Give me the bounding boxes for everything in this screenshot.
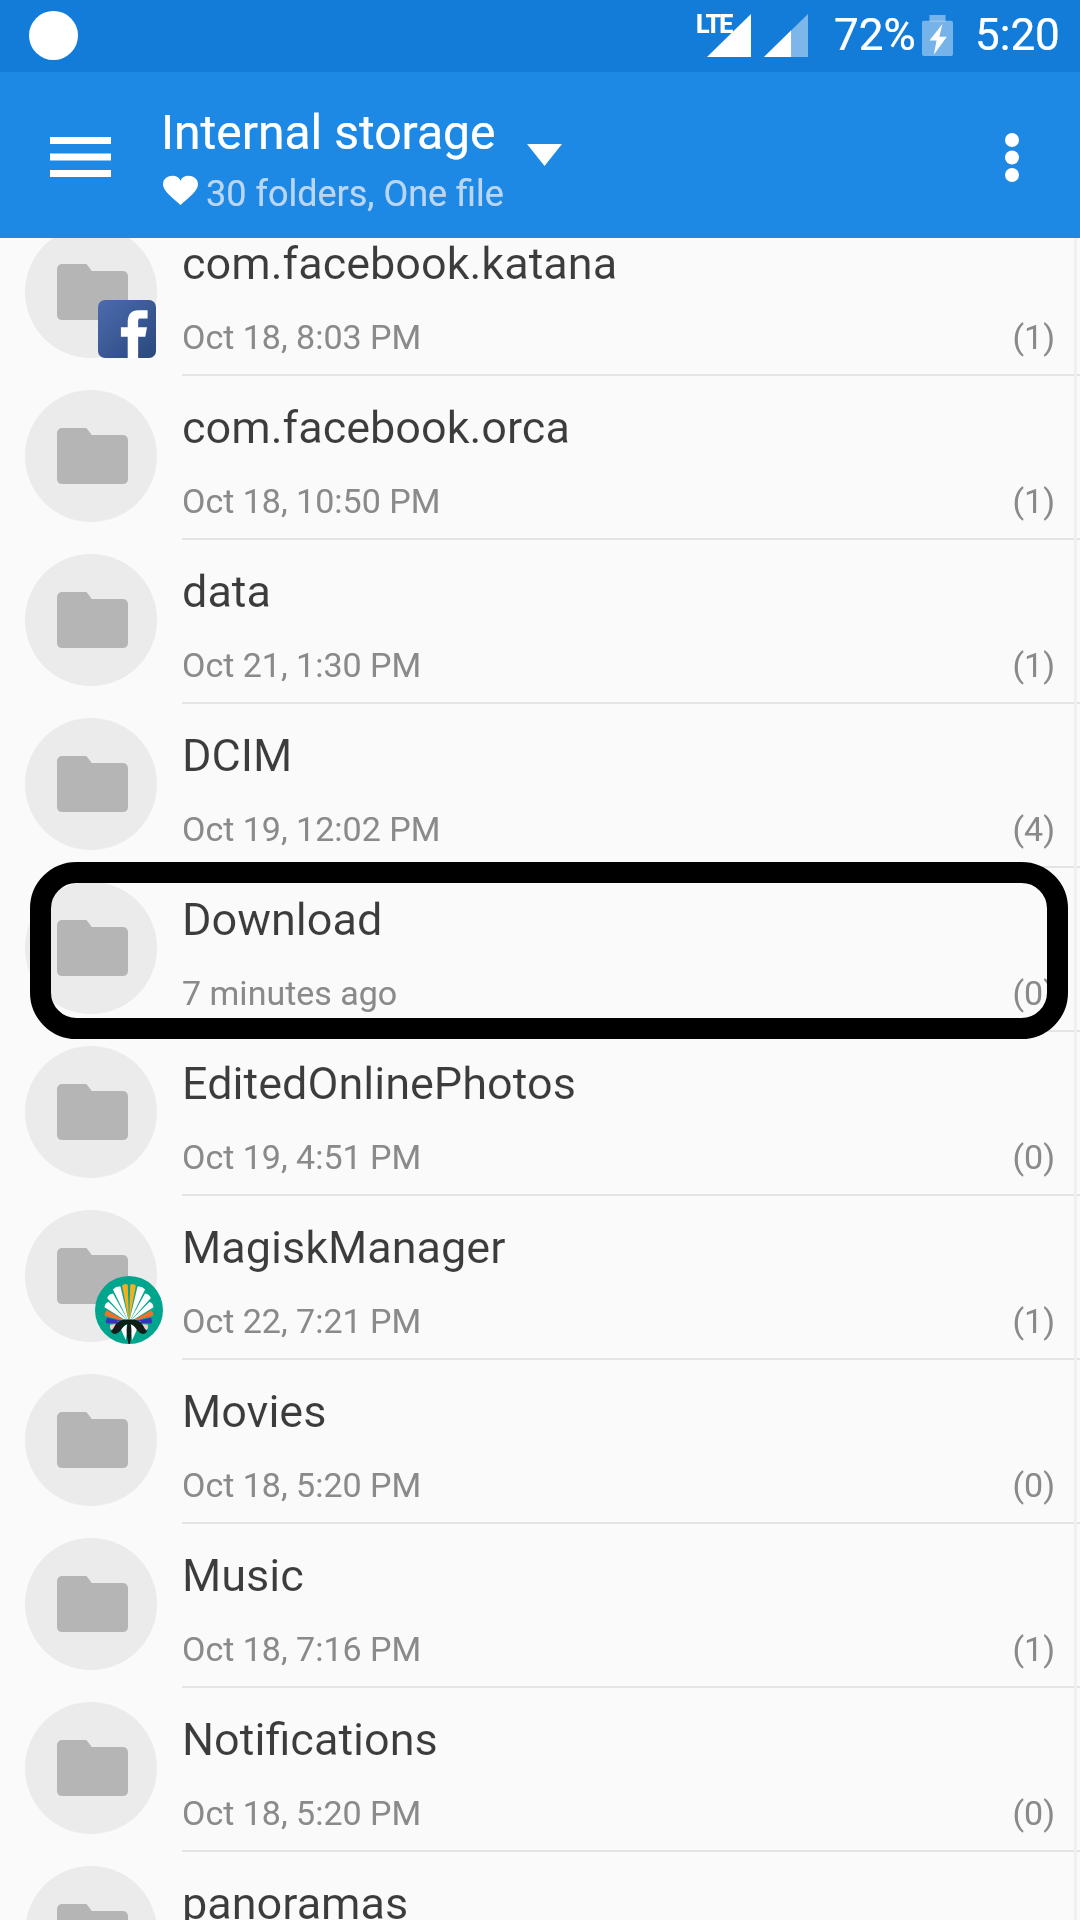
staticText: DCIM	[182, 729, 293, 782]
staticText: (0)	[1012, 973, 1055, 1013]
button[interactable]: More options	[963, 108, 1061, 206]
button[interactable]: com.facebook.katana	[0, 238, 1080, 376]
button[interactable]: Notifications	[0, 1688, 1080, 1852]
staticText: MagiskManager	[182, 1221, 506, 1274]
button[interactable]: Open navigation drawer	[31, 108, 129, 206]
button[interactable]: panoramas	[0, 1852, 1080, 1920]
staticText: Download	[182, 893, 383, 946]
staticText: (0)	[1012, 1137, 1055, 1177]
staticText: Oct 18, 5:20 PM	[182, 1465, 422, 1505]
button[interactable]: Music	[0, 1524, 1080, 1688]
staticText: 5:20	[975, 9, 1060, 61]
staticText: com.facebook.katana	[182, 238, 618, 290]
staticText: com.facebook.orca	[182, 401, 570, 454]
button[interactable]: com.facebook.orca	[0, 376, 1080, 540]
button[interactable]: Movies	[0, 1360, 1080, 1524]
staticText: data	[182, 565, 272, 618]
staticText: Oct 18, 8:03 PM	[182, 317, 422, 357]
staticText: 30 folders, One file	[206, 173, 504, 215]
staticText: panoramas	[182, 1877, 409, 1920]
staticText: (1)	[1012, 481, 1055, 521]
staticText: EditedOnlinePhotos	[182, 1057, 576, 1110]
button[interactable]: EditedOnlinePhotos	[0, 1032, 1080, 1196]
staticText: 7 minutes ago	[182, 973, 398, 1013]
staticText: (1)	[1012, 645, 1055, 685]
staticText: Oct 18, 7:16 PM	[182, 1629, 422, 1669]
staticText: Movies	[182, 1385, 327, 1438]
staticText: Oct 19, 4:51 PM	[182, 1137, 422, 1177]
staticText: LTE	[696, 10, 732, 39]
staticText: Oct 21, 1:30 PM	[182, 645, 422, 685]
staticText: Oct 22, 7:21 PM	[182, 1301, 422, 1341]
staticText: Oct 19, 12:02 PM	[182, 809, 441, 849]
staticText: (1)	[1012, 317, 1055, 357]
staticText: 72%	[834, 9, 916, 61]
staticText: (1)	[1012, 1301, 1055, 1341]
staticText: (1)	[1012, 1629, 1055, 1669]
button[interactable]: data	[0, 540, 1080, 704]
staticText: (0)	[1012, 1793, 1055, 1833]
button[interactable]: Internal storage	[150, 92, 580, 178]
button[interactable]: DCIM	[0, 704, 1080, 868]
staticText: Music	[182, 1549, 304, 1602]
button[interactable]: MagiskManager	[0, 1196, 1080, 1360]
button[interactable]: Download	[0, 868, 1080, 1032]
staticText: Oct 18, 10:50 PM	[182, 481, 441, 521]
staticText: (4)	[1012, 809, 1055, 849]
staticText: (0)	[1012, 1465, 1055, 1505]
staticText: Internal storage	[161, 104, 496, 160]
staticText: Notifications	[182, 1713, 438, 1766]
staticText: Oct 18, 5:20 PM	[182, 1793, 422, 1833]
